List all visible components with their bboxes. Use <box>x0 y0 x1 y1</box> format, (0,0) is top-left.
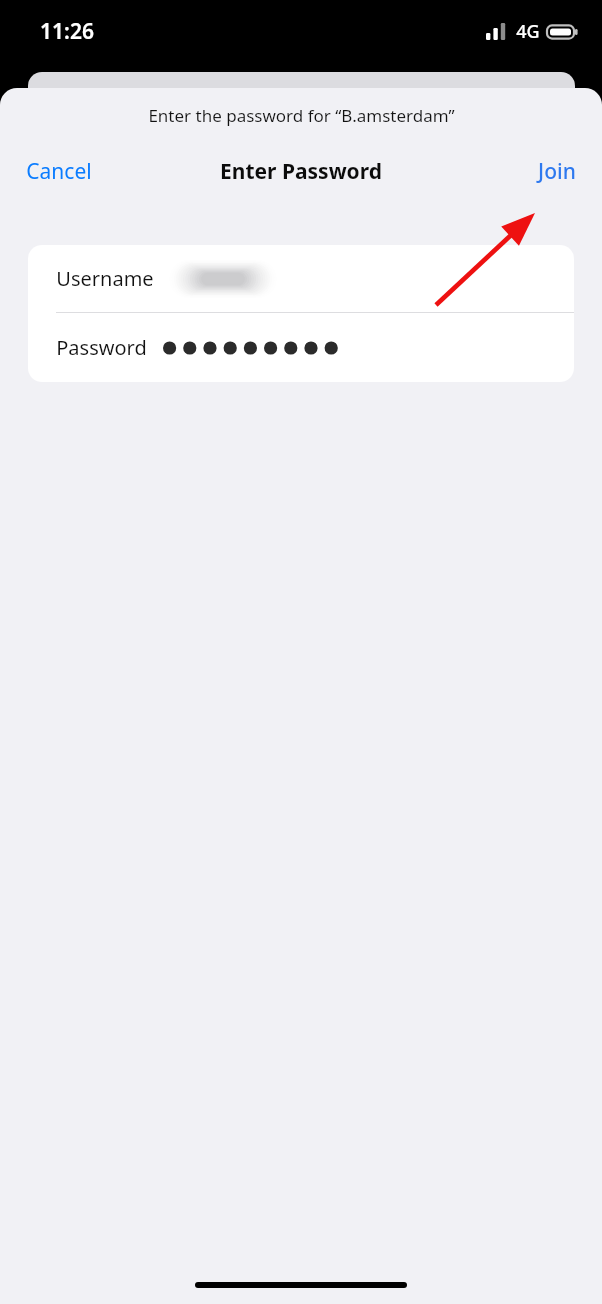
button[interactable]: Join <box>524 151 590 192</box>
staticText: 4G <box>516 19 540 44</box>
button[interactable]: Password <box>28 313 574 382</box>
staticText: Enter the password for “B.amsterdam” <box>148 104 455 127</box>
staticText: 11:26 <box>40 17 94 46</box>
staticText: Username <box>56 265 154 292</box>
staticText: Password <box>56 334 147 361</box>
staticText: Enter Password <box>220 157 382 186</box>
button[interactable]: Cancel <box>12 151 106 192</box>
button[interactable]: Username <box>28 245 574 312</box>
staticText: Cancel <box>26 157 92 186</box>
staticText: Join <box>538 157 576 186</box>
